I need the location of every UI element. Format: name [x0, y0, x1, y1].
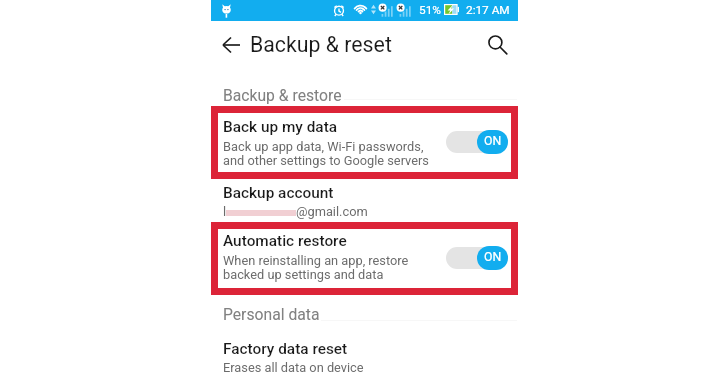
staticText: ON: [484, 134, 502, 148]
staticText: Back up my data: [223, 118, 338, 136]
staticText: ON: [484, 250, 502, 264]
staticText: 2:17 AM: [466, 3, 510, 17]
staticText: l: [223, 204, 227, 219]
staticText: Factory data reset: [223, 340, 348, 358]
staticText: Back up app data, Wi-Fi passwords,: [223, 139, 424, 154]
button[interactable]: Navigate up: [215, 28, 248, 61]
button[interactable]: Toggle on: [446, 127, 508, 157]
staticText: When reinstalling an app, restore: [223, 253, 409, 268]
staticText: @gmail.com: [296, 204, 368, 219]
staticText: Automatic restore: [223, 232, 347, 250]
button[interactable]: [218, 180, 511, 219]
staticText: Personal data: [223, 305, 320, 323]
staticText: Backup & restore: [223, 86, 342, 104]
staticText: Backup & reset: [250, 32, 392, 57]
staticText: Erases all data on device: [223, 360, 364, 375]
staticText: and other settings to Google servers: [223, 153, 429, 168]
button[interactable]: Toggle on: [446, 243, 508, 273]
button[interactable]: [218, 229, 511, 288]
staticText: 51%: [419, 3, 441, 17]
button[interactable]: Search: [481, 27, 514, 60]
staticText: Backup account: [223, 184, 334, 202]
button[interactable]: [218, 336, 511, 375]
staticText: backed up settings and data: [223, 267, 384, 282]
button[interactable]: [218, 113, 511, 172]
